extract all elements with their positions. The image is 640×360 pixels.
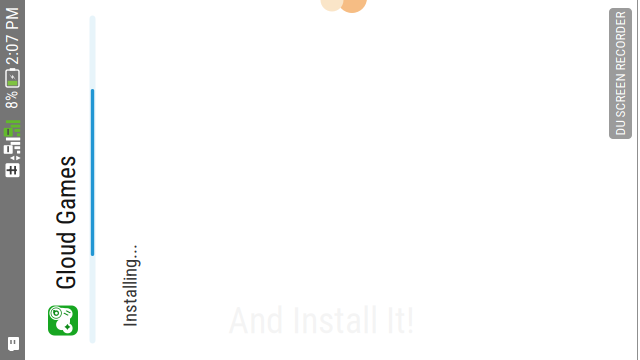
- staticText: DU SCREEN RECORDER: [558, 66, 640, 81]
- button[interactable]: DU Screen Recorder: [609, 8, 632, 139]
- staticText: And Install It!: [228, 300, 415, 342]
